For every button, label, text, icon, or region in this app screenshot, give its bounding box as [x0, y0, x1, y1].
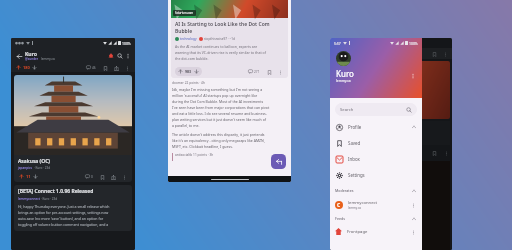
button[interactable]: Notifications	[106, 51, 115, 60]
staticText: As the AI market continues to balloon, e…	[175, 44, 258, 49]
button[interactable]: [BETA] Connect 1.0.96 Released	[14, 185, 132, 231]
staticText: 983	[185, 69, 192, 74]
button[interactable]: Save	[430, 149, 438, 157]
staticText: doomer 22 points · 4h	[172, 81, 205, 85]
button[interactable]: 180	[15, 65, 38, 70]
button[interactable]: Account options	[408, 71, 417, 80]
staticText: The article doesn't address this dispari…	[172, 132, 265, 137]
staticText: lemmy.ca	[336, 79, 351, 83]
staticText: C	[337, 202, 341, 209]
staticText: antisocialtb 11 points · 3h	[175, 153, 214, 157]
staticText: japanpics	[18, 166, 33, 170]
staticText: Feeds	[335, 216, 411, 221]
button[interactable]: 0	[85, 174, 93, 179]
button[interactable]: C	[330, 196, 422, 213]
staticText: AI Is Starting to Look Like the Dot Com	[175, 21, 270, 28]
staticText: Frontpage	[347, 229, 409, 235]
staticText: like it's an equivalency - citing only m…	[172, 138, 265, 143]
staticText: Hi, happy Thursday everyone. Just a smal…	[18, 204, 110, 209]
staticText: futurism.com	[175, 11, 194, 15]
staticText: I've seen have been from major corporati…	[172, 105, 270, 110]
staticText: auto-save (no more 'save' button), and a…	[18, 216, 104, 221]
staticText: Asakusa (OC)	[18, 158, 50, 165]
staticText: a parallel, to me.	[172, 123, 200, 128]
button[interactable]: Feed options	[409, 228, 417, 236]
staticText: MSFT, etc. Clickbait headline, I guess.	[172, 144, 233, 149]
staticText: · Kuro · 23d	[40, 197, 58, 201]
button[interactable]: Frontpage	[330, 224, 422, 239]
staticText: Idk, maybe I'm missing something but I'm…	[172, 87, 263, 92]
staticText: Settings	[348, 172, 417, 178]
button[interactable]: Search	[115, 51, 124, 60]
staticText: Moderates	[335, 188, 411, 193]
button[interactable]: More options	[442, 149, 450, 157]
staticText: Inbox	[348, 156, 417, 162]
staticText: 100%	[409, 41, 418, 46]
button[interactable]: Reply	[271, 154, 286, 169]
button[interactable]: More options	[441, 50, 449, 58]
staticText: Search	[340, 107, 406, 113]
staticText: Kuro	[25, 50, 38, 57]
button[interactable]: More options	[276, 68, 284, 76]
staticText: toggling off volume button comment navig…	[18, 222, 109, 227]
button[interactable]: Save	[430, 50, 438, 58]
staticText: warning that its VC-driven rise is eeril…	[175, 50, 266, 55]
staticText: lemmy.ca	[41, 57, 55, 61]
button[interactable]: Share	[109, 173, 117, 181]
staticText: Bubble	[175, 28, 193, 35]
button[interactable]: Moderates	[330, 185, 422, 196]
button[interactable]: More options	[120, 173, 128, 181]
staticText: 11	[26, 174, 31, 179]
button[interactable]: Settings	[330, 167, 422, 183]
staticText: and eat a little loss. I do see several …	[172, 111, 267, 116]
button[interactable]: Share	[112, 64, 120, 72]
button[interactable]: Community options	[409, 201, 417, 209]
staticText: lemmy.ca	[348, 206, 361, 210]
staticText: [BETA] Connect 1.0.96 Released	[18, 188, 94, 195]
staticText: the dot-com bubble.	[175, 56, 209, 61]
staticText: 180	[23, 65, 30, 70]
staticText: technology	[180, 37, 197, 41]
staticText: · Kuro · 23d	[33, 166, 51, 170]
staticText: stopthisnoise97 · ~1d	[204, 37, 235, 41]
button[interactable]: More options	[123, 64, 131, 72]
button[interactable]: futurism.com	[171, 0, 288, 78]
staticText: Kuro	[336, 68, 354, 79]
staticText: Saved	[348, 140, 417, 146]
staticText: @sunder	[25, 57, 39, 61]
button[interactable]: Save	[265, 68, 273, 76]
staticText: plan writing services but it just doesn'…	[172, 117, 266, 122]
staticText: 100%	[122, 41, 131, 46]
staticText: 271	[254, 70, 260, 74]
staticText: 0	[91, 175, 93, 179]
button[interactable]: Saved	[330, 135, 422, 151]
button[interactable]: Save	[101, 64, 109, 72]
button[interactable]: 46	[86, 65, 96, 70]
staticText: lemmyconnect	[18, 197, 40, 201]
button[interactable]: Asakusa (OC)	[14, 75, 132, 182]
staticText: Profile	[348, 124, 411, 130]
button[interactable]: Save	[98, 173, 106, 181]
staticText: brings an option for per-account setting…	[18, 210, 109, 215]
button[interactable]: Feeds	[330, 213, 422, 224]
staticText: million 'successful' AI startups pop up …	[172, 93, 258, 98]
button[interactable]: Search	[335, 103, 417, 116]
staticText: 5:57	[334, 41, 341, 46]
button[interactable]: Inbox	[330, 151, 422, 167]
button[interactable]: More options	[124, 52, 132, 60]
button[interactable]: 11	[18, 174, 39, 179]
staticText: during the Dot Com Bubble. Most of the A…	[172, 99, 264, 104]
staticText: lemmyconnect	[348, 200, 378, 206]
button[interactable]: 271	[248, 69, 260, 74]
staticText: ●●●	[15, 41, 24, 45]
button[interactable]: Profile	[330, 119, 422, 135]
button[interactable]: Back	[14, 51, 24, 61]
button[interactable]: 983	[175, 67, 202, 76]
staticText: 46	[92, 66, 96, 70]
